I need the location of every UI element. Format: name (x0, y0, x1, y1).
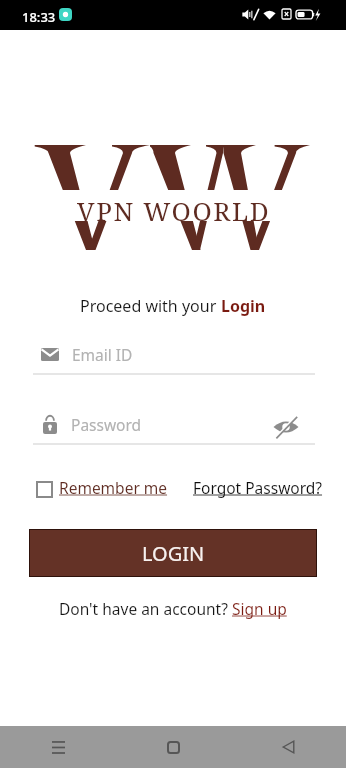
staticText: Password (71, 414, 142, 435)
staticText: LOGIN (142, 540, 205, 567)
button[interactable]: Recent apps (0, 726, 116, 768)
button[interactable]: Show password (271, 412, 301, 442)
button[interactable]: Back (231, 726, 346, 768)
staticText: 18:33 (22, 8, 56, 26)
staticText: Don't have an account? (59, 598, 232, 619)
button[interactable]: Remember me (33, 474, 159, 495)
staticText: Proceed with your (80, 295, 221, 317)
button[interactable]: Forgot Password? (193, 477, 323, 498)
staticText: Sign up (232, 598, 287, 619)
button[interactable]: Sign up (232, 598, 287, 619)
button[interactable]: LOGIN (29, 529, 317, 577)
staticText: Login (221, 295, 266, 317)
staticText: Email ID (72, 344, 133, 365)
staticText: VPN WOORLD (77, 193, 271, 228)
staticText: Remember me (59, 477, 168, 498)
staticText: Forgot Password? (193, 477, 323, 498)
button[interactable]: Home (116, 726, 231, 768)
button[interactable]: Email ID (33, 338, 315, 376)
